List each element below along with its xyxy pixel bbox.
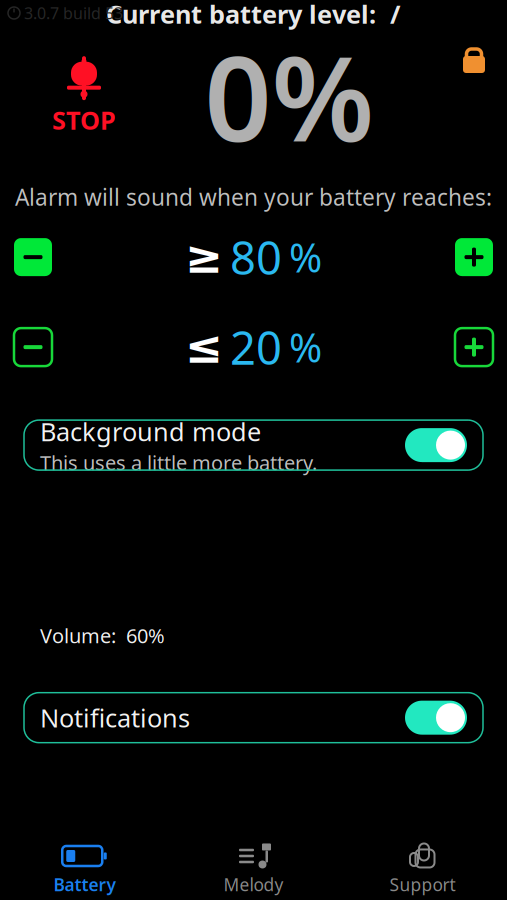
staticText: 3.0.7 build 53	[24, 2, 123, 24]
staticText: 80	[230, 227, 282, 287]
button[interactable]: Increase 20 percent threshold	[447, 320, 501, 374]
button[interactable]: Stop alarm	[36, 55, 132, 137]
staticText: 20	[230, 317, 282, 377]
button[interactable]: Decrease 80 percent threshold	[6, 230, 60, 284]
staticText: Background mode	[40, 414, 261, 448]
staticText: 0%	[204, 18, 374, 174]
staticText: Melody	[223, 873, 283, 896]
button[interactable]: Increase 80 percent threshold	[447, 230, 501, 284]
staticText: Battery	[53, 873, 115, 896]
staticText: ≥	[185, 231, 223, 283]
staticText: ≤	[185, 321, 223, 373]
staticText: %	[289, 320, 322, 374]
staticText: Support	[389, 873, 455, 896]
button[interactable]: Background mode	[24, 420, 483, 470]
staticText: This uses a little more battery.	[40, 449, 317, 476]
staticText: Notifications	[40, 701, 190, 734]
staticText: Current battery level: /	[106, 0, 401, 31]
staticText: Alarm will sound when your battery reach…	[15, 182, 492, 212]
button[interactable]: Melody	[169, 840, 338, 898]
button[interactable]: Decrease 20 percent threshold	[6, 320, 60, 374]
button[interactable]: Notifications	[24, 693, 483, 743]
staticText: STOP	[52, 103, 116, 137]
staticText: Volume: 60%	[40, 622, 165, 649]
staticText: %	[289, 230, 322, 284]
button[interactable]: Support	[338, 840, 507, 898]
button[interactable]: Battery	[0, 840, 169, 898]
